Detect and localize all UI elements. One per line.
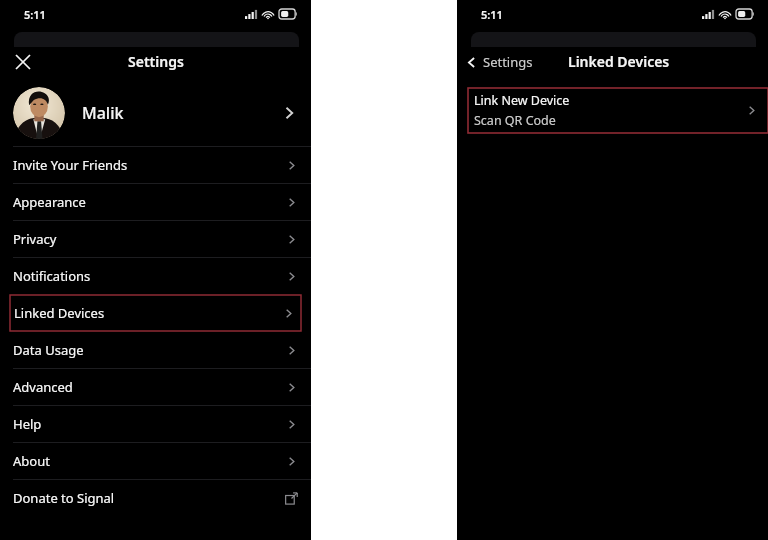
staticText: Settings [128, 52, 184, 71]
staticText: Invite Your Friends [13, 156, 128, 174]
button[interactable]: Privacy [0, 221, 311, 257]
staticText: Malik [82, 102, 124, 124]
staticText: Link New Device [474, 92, 570, 109]
staticText: Linked Devices [568, 52, 670, 71]
button[interactable]: Malik [0, 80, 311, 146]
button[interactable]: Data Usage [0, 332, 311, 368]
button[interactable]: Donate to Signal [0, 480, 311, 516]
staticText: Scan QR Code [474, 112, 556, 129]
button[interactable]: Notifications [0, 258, 311, 294]
button[interactable]: Close settings [8, 47, 38, 77]
staticText: 5:11 [24, 7, 46, 22]
button[interactable]: Linked Devices [10, 295, 301, 331]
button[interactable]: Invite Your Friends [0, 147, 311, 183]
staticText: 5:11 [481, 7, 503, 22]
staticText: Donate to Signal [13, 489, 115, 507]
button[interactable]: Link New Device [468, 88, 768, 133]
staticText: Appearance [13, 193, 86, 211]
button[interactable]: Help [0, 406, 311, 442]
staticText: Notifications [13, 267, 91, 285]
staticText: Advanced [13, 378, 73, 396]
staticText: Help [13, 415, 42, 433]
staticText: Linked Devices [14, 304, 105, 322]
staticText: About [13, 452, 50, 470]
button[interactable]: Advanced [0, 369, 311, 405]
button[interactable]: Appearance [0, 184, 311, 220]
staticText: Privacy [13, 230, 57, 248]
button[interactable]: About [0, 443, 311, 479]
staticText: Data Usage [13, 341, 84, 359]
staticText: Settings [483, 53, 533, 71]
button[interactable]: Settings [457, 46, 539, 78]
